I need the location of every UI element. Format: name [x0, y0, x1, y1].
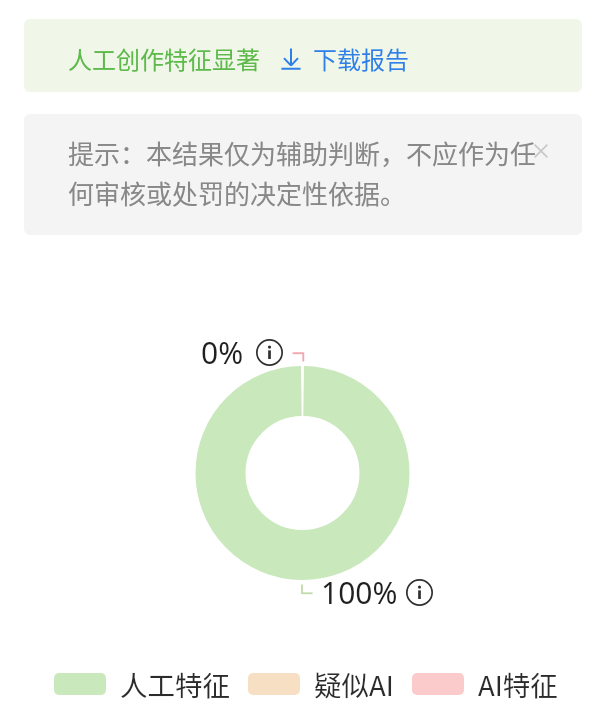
- staticText: 100%: [321, 572, 398, 613]
- button[interactable]: 疑似AI: [248, 664, 394, 704]
- staticText: 下载报告: [313, 41, 409, 76]
- button[interactable]: One hundred percent details: [321, 572, 433, 613]
- staticText: 0%: [201, 332, 244, 373]
- button[interactable]: AI特征: [412, 664, 558, 704]
- staticText: 人工创作特征显著: [68, 41, 260, 76]
- button[interactable]: 人工创作特征显著: [24, 19, 582, 92]
- button[interactable]: 人工特征: [54, 664, 230, 704]
- button[interactable]: Close: [531, 141, 551, 161]
- button[interactable]: Zero percent details: [201, 332, 283, 373]
- staticText: 人工特征: [120, 664, 230, 704]
- staticText: 疑似AI: [314, 664, 394, 704]
- staticText: AI特征: [478, 664, 558, 704]
- staticText: 提示：本结果仅为辅助判断，不应作为任何审核或处罚的决定性依据。: [68, 134, 544, 212]
- button[interactable]: 下载报告: [281, 41, 409, 76]
